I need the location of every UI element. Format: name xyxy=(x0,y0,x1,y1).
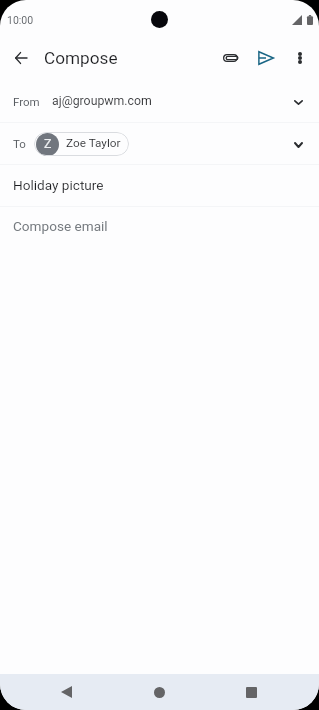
staticText: From xyxy=(13,95,40,108)
staticText: To xyxy=(13,137,26,150)
staticText: Compose email xyxy=(13,218,108,234)
button[interactable]: Attach file xyxy=(212,39,249,76)
button[interactable]: More options xyxy=(282,40,317,75)
staticText: Holiday picture xyxy=(13,177,104,193)
staticText: aj@groupwm.com xyxy=(52,94,152,108)
staticText: Compose xyxy=(44,48,118,68)
staticText: Z xyxy=(44,136,52,151)
button[interactable]: Compose email xyxy=(0,207,319,249)
button[interactable]: Send xyxy=(247,39,284,76)
button[interactable]: From xyxy=(0,84,319,122)
button[interactable]: To xyxy=(0,123,319,164)
button[interactable]: Back xyxy=(48,674,85,710)
button[interactable]: Z xyxy=(34,132,129,156)
staticText: Zoe Taylor xyxy=(66,136,121,150)
button[interactable]: Back xyxy=(3,40,39,76)
button[interactable]: Holiday picture xyxy=(0,165,319,206)
staticText: 10:00 xyxy=(7,14,34,26)
button[interactable]: Recent apps xyxy=(233,674,270,710)
button[interactable]: Home xyxy=(141,674,178,710)
